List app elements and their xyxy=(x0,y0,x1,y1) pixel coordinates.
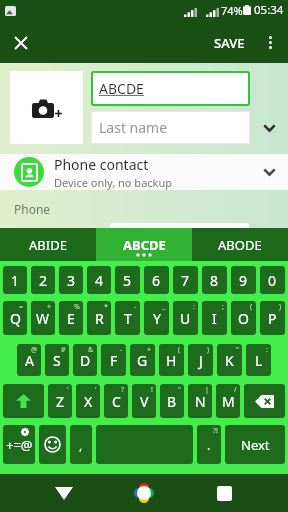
button[interactable]: Next xyxy=(225,425,285,464)
button[interactable]: Home xyxy=(110,474,178,512)
button[interactable]: A xyxy=(17,344,41,376)
staticText: # xyxy=(61,345,66,355)
staticText: ) xyxy=(207,345,210,355)
button[interactable]: Z xyxy=(48,384,72,418)
button[interactable]: ABODE xyxy=(192,228,288,261)
staticText: ?! xyxy=(213,426,218,436)
button[interactable]: W xyxy=(31,301,55,335)
button[interactable]: . xyxy=(197,425,221,464)
button[interactable]: Shift xyxy=(3,384,44,418)
staticText: 05:34 xyxy=(254,2,284,18)
button[interactable]: C xyxy=(104,384,128,418)
staticText: - xyxy=(134,302,137,312)
button[interactable]: Y xyxy=(144,301,169,335)
button[interactable]: D xyxy=(73,344,97,376)
button[interactable]: Close xyxy=(0,22,41,63)
button[interactable]: +=@ xyxy=(3,425,35,464)
staticText: 9 xyxy=(239,271,248,290)
staticText: W xyxy=(36,309,50,328)
button[interactable]: J xyxy=(188,344,213,376)
staticText: S xyxy=(53,351,61,370)
button[interactable]: More options xyxy=(253,22,288,63)
staticText: 74% xyxy=(221,3,243,18)
staticText: J xyxy=(199,351,203,370)
staticText: ' xyxy=(95,385,97,395)
staticText: 3 xyxy=(67,271,76,290)
button[interactable]: Last name xyxy=(91,111,250,144)
staticText: D xyxy=(80,351,91,370)
staticText: 7 xyxy=(181,271,190,290)
button[interactable]: 6 xyxy=(144,266,169,294)
staticText: " xyxy=(236,345,239,355)
button[interactable]: O xyxy=(231,301,256,335)
button[interactable]: R xyxy=(87,301,111,335)
staticText: X xyxy=(84,392,93,411)
button[interactable]: , xyxy=(70,425,92,464)
button[interactable]: ABIDE xyxy=(0,228,96,261)
staticText: _ xyxy=(162,302,166,312)
button[interactable]: I xyxy=(202,301,227,335)
button[interactable]: 2 xyxy=(31,266,55,294)
staticText: % xyxy=(74,302,80,312)
staticText: ABCDE xyxy=(99,79,144,98)
staticText: 4 xyxy=(95,271,104,290)
button[interactable]: H xyxy=(159,344,184,376)
button[interactable]: 1 xyxy=(3,266,27,294)
button[interactable]: Recents xyxy=(190,474,258,512)
button[interactable]: B xyxy=(160,384,184,418)
staticText: ) xyxy=(279,302,282,312)
button[interactable]: P xyxy=(260,301,285,335)
staticText: R xyxy=(95,309,104,328)
button[interactable]: Q xyxy=(3,301,27,335)
staticText: +=@ xyxy=(6,436,33,454)
staticText: Z xyxy=(56,392,65,411)
staticText: K xyxy=(225,351,234,370)
staticText: 2 xyxy=(39,271,48,290)
button[interactable]: F xyxy=(101,344,126,376)
button[interactable]: S xyxy=(45,344,69,376)
staticText: ABCDE xyxy=(123,236,166,254)
button[interactable]: ABCDE xyxy=(96,228,192,261)
button[interactable]: 8 xyxy=(202,266,227,294)
button[interactable]: V xyxy=(132,384,156,418)
button[interactable]: M xyxy=(216,384,240,418)
staticText: - xyxy=(120,345,123,355)
button[interactable]: E xyxy=(59,301,83,335)
button[interactable]: L xyxy=(246,344,271,376)
button[interactable]: 7 xyxy=(173,266,198,294)
staticText: Phone contact xyxy=(54,155,149,174)
button[interactable]: 5 xyxy=(115,266,140,294)
staticText: = xyxy=(19,302,24,312)
staticText: F xyxy=(110,351,118,370)
staticText: 1 xyxy=(11,271,20,290)
button[interactable]: K xyxy=(217,344,242,376)
button[interactable]: 3 xyxy=(59,266,83,294)
button[interactable]: Phone contact xyxy=(0,154,288,190)
staticText: ABIDE xyxy=(29,236,67,254)
button[interactable]: Back xyxy=(30,474,97,512)
button[interactable] xyxy=(96,425,193,464)
button[interactable]: T xyxy=(115,301,140,335)
button[interactable]: SAVE xyxy=(206,22,253,63)
staticText: G xyxy=(137,351,148,370)
button[interactable]: G xyxy=(130,344,155,376)
staticText: U xyxy=(180,309,191,328)
button[interactable]: Expand name fields xyxy=(250,71,288,147)
staticText: ( xyxy=(178,345,181,355)
staticText: * xyxy=(104,302,108,312)
button[interactable]: Delete xyxy=(244,384,285,418)
button[interactable]: Emoji xyxy=(39,425,66,464)
button[interactable]: 0 xyxy=(260,266,285,294)
staticText: ; xyxy=(222,302,224,312)
button[interactable]: N xyxy=(188,384,212,418)
button[interactable]: Add photo xyxy=(10,71,83,144)
staticText: Next xyxy=(241,436,270,454)
button[interactable]: 4 xyxy=(87,266,111,294)
staticText: + xyxy=(47,302,52,312)
staticText: L xyxy=(255,351,263,370)
button[interactable]: X xyxy=(76,384,100,418)
staticText: " xyxy=(178,385,181,395)
button[interactable]: ABCDE xyxy=(91,71,250,106)
button[interactable]: U xyxy=(173,301,198,335)
button[interactable]: 9 xyxy=(231,266,256,294)
